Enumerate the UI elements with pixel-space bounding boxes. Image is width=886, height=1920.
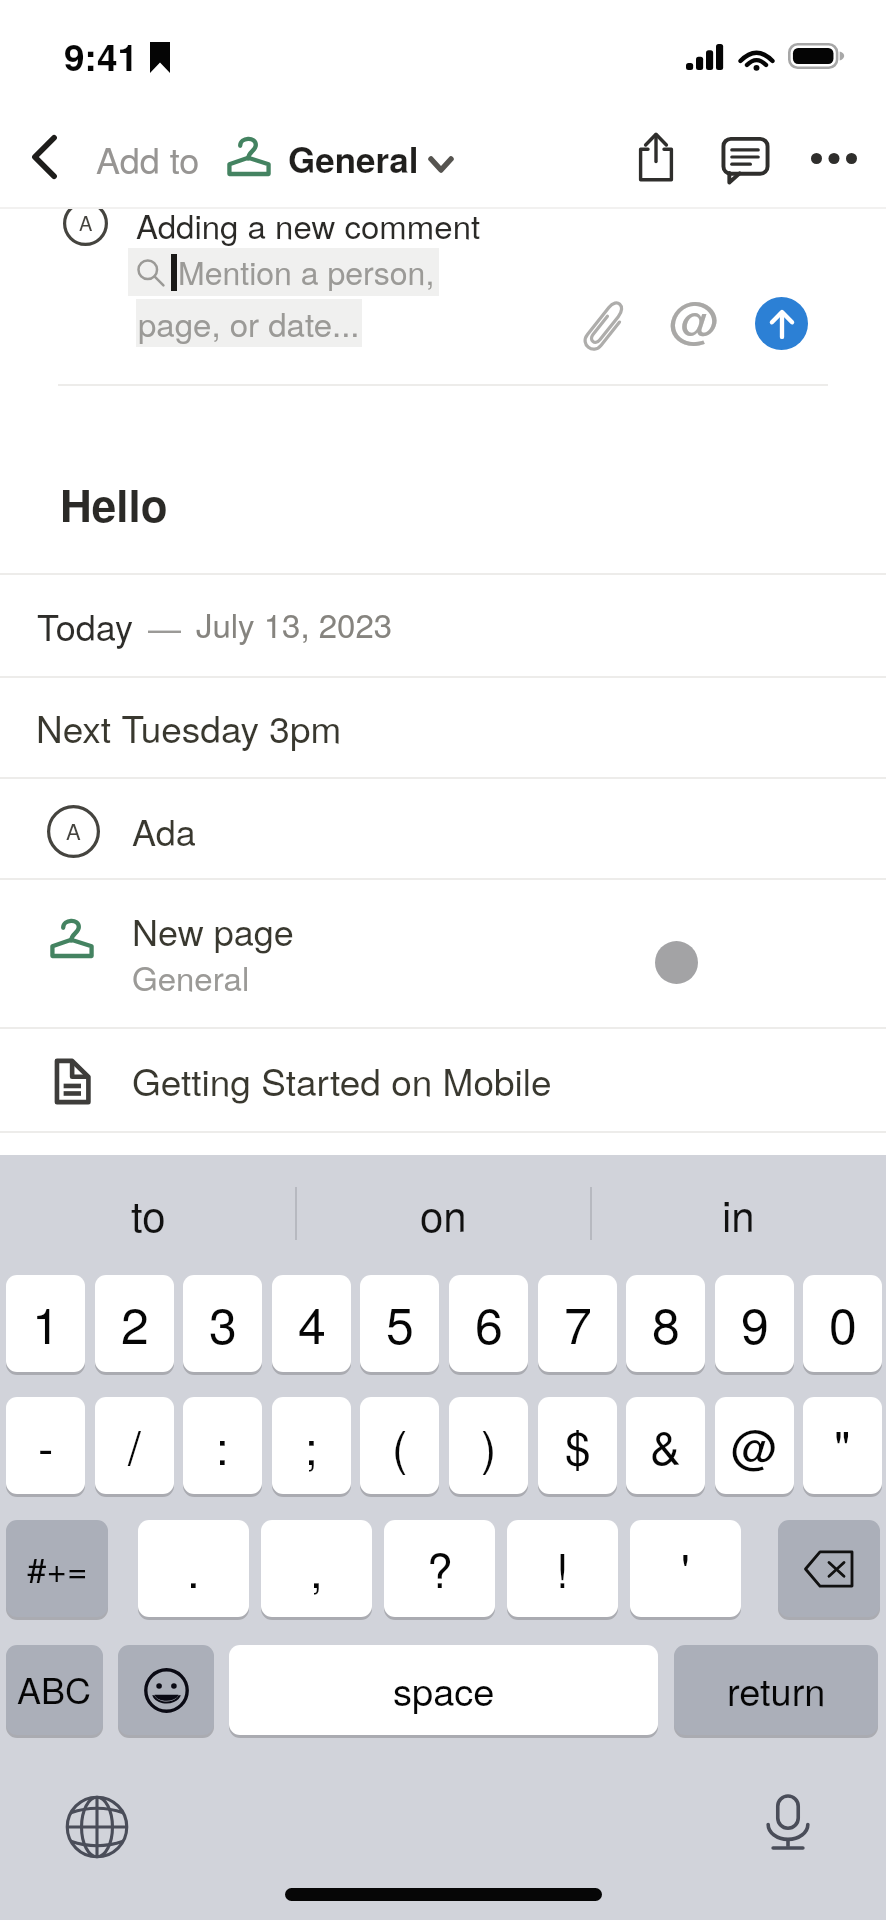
button[interactable]: & <box>626 1397 705 1494</box>
button[interactable]: . <box>138 1520 249 1617</box>
staticText: to <box>131 1184 166 1244</box>
button[interactable]: Back <box>10 123 78 191</box>
button[interactable]: , <box>261 1520 372 1617</box>
staticText: New page <box>132 905 294 957</box>
button[interactable]: 7 <box>538 1275 617 1372</box>
button[interactable]: ' <box>630 1520 741 1617</box>
button[interactable]: 6 <box>449 1275 528 1372</box>
button[interactable]: Backspace <box>778 1520 880 1617</box>
button[interactable]: Comments <box>709 124 781 196</box>
button[interactable]: return <box>674 1645 878 1735</box>
staticText: - <box>38 1412 54 1478</box>
staticText: 9:41 <box>64 29 139 82</box>
button[interactable]: 1 <box>6 1275 85 1372</box>
staticText: Next Tuesday 3pm <box>36 701 342 754</box>
staticText: Adding a new comment <box>136 201 481 248</box>
button[interactable]: ( <box>360 1397 439 1494</box>
button[interactable]: Send <box>755 297 808 350</box>
button[interactable]: / <box>95 1397 174 1494</box>
button[interactable]: 0 <box>803 1275 882 1372</box>
staticText: #+= <box>27 1543 88 1593</box>
staticText: page, or date... <box>138 299 360 346</box>
staticText: on <box>420 1184 467 1244</box>
button[interactable]: #+= <box>6 1520 108 1617</box>
staticText: ; <box>305 1412 318 1478</box>
staticText: 5 <box>386 1287 414 1359</box>
staticText: 2 <box>121 1287 149 1359</box>
staticText: 1 <box>32 1287 60 1359</box>
button[interactable]: ? <box>384 1520 495 1617</box>
button[interactable]: - <box>6 1397 85 1494</box>
staticText: Getting Started on Mobile <box>132 1054 552 1107</box>
staticText: 0 <box>829 1287 857 1359</box>
staticText: ? <box>427 1535 453 1601</box>
staticText: $ <box>565 1412 591 1478</box>
staticText: . <box>187 1535 200 1601</box>
staticText: 6 <box>475 1287 503 1359</box>
staticText: 7 <box>564 1287 592 1359</box>
button[interactable]: Hello <box>0 388 886 573</box>
staticText: in <box>722 1184 755 1244</box>
button[interactable]: ! <box>507 1520 618 1617</box>
button[interactable]: Change keyboard <box>66 1796 128 1858</box>
staticText: Today <box>37 600 133 652</box>
staticText: 9 <box>741 1287 769 1359</box>
button[interactable]: 9 <box>715 1275 794 1372</box>
staticText: / <box>128 1412 141 1478</box>
button[interactable]: 8 <box>626 1275 705 1372</box>
button[interactable]: Getting Started on Mobile <box>0 1029 886 1131</box>
button[interactable]: 2 <box>95 1275 174 1372</box>
staticText: Add to <box>96 133 200 185</box>
button[interactable]: in <box>591 1155 886 1272</box>
button[interactable]: to <box>0 1155 296 1272</box>
button[interactable]: on <box>296 1155 591 1272</box>
button[interactable]: More options <box>798 122 870 194</box>
staticText: ' <box>681 1535 690 1601</box>
staticText: ! <box>556 1535 569 1601</box>
staticText: A <box>66 815 81 847</box>
button[interactable]: Dictate <box>757 1791 819 1853</box>
button[interactable]: ABC <box>6 1645 103 1735</box>
staticText: ( <box>392 1412 408 1478</box>
button[interactable]: A <box>0 779 886 878</box>
button[interactable]: Attach file <box>573 293 637 357</box>
staticText: — <box>148 603 181 650</box>
staticText: General <box>288 134 419 184</box>
button[interactable]: Next Tuesday 3pm <box>0 678 886 777</box>
button[interactable]: 5 <box>360 1275 439 1372</box>
staticText: 8 <box>652 1287 680 1359</box>
staticText: @ <box>731 1412 778 1478</box>
staticText: " <box>834 1412 851 1478</box>
button[interactable]: General <box>288 135 451 185</box>
staticText: Mention a person, <box>178 248 435 294</box>
button[interactable]: @ <box>715 1397 794 1494</box>
staticText: 4 <box>298 1287 326 1359</box>
button[interactable]: : <box>183 1397 262 1494</box>
staticText: Ada <box>132 805 196 857</box>
button[interactable]: 4 <box>272 1275 351 1372</box>
button[interactable]: Share <box>620 121 692 193</box>
staticText: General <box>132 953 250 1000</box>
staticText: space <box>393 1662 495 1716</box>
staticText: return <box>727 1662 826 1716</box>
staticText: 3 <box>209 1287 237 1359</box>
staticText: , <box>310 1535 323 1601</box>
staticText: @ <box>669 282 720 346</box>
button[interactable]: 3 <box>183 1275 262 1372</box>
button[interactable]: Mention <box>662 293 726 357</box>
staticText: Hello <box>60 472 168 535</box>
staticText: : <box>216 1412 229 1478</box>
staticText: A <box>79 208 93 237</box>
button[interactable]: space <box>229 1645 658 1735</box>
button[interactable]: " <box>803 1397 882 1494</box>
staticText: ) <box>481 1412 497 1478</box>
staticText: ABC <box>17 1663 92 1715</box>
staticText: & <box>650 1412 681 1478</box>
button[interactable]: ; <box>272 1397 351 1494</box>
button[interactable]: New page <box>0 880 886 1027</box>
button[interactable]: $ <box>538 1397 617 1494</box>
button[interactable]: Today <box>0 575 886 676</box>
button[interactable]: ) <box>449 1397 528 1494</box>
staticText: July 13, 2023 <box>196 600 393 647</box>
button[interactable]: Emoji keyboard <box>118 1645 214 1735</box>
